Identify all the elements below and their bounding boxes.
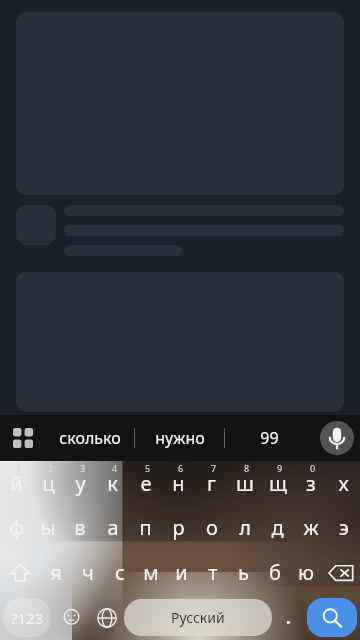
- button[interactable]: г: [195, 461, 228, 505]
- staticText: ф: [9, 514, 24, 541]
- staticText: 8: [244, 462, 250, 474]
- button[interactable]: н: [162, 461, 195, 505]
- staticText: п: [139, 514, 152, 541]
- staticText: ж: [303, 514, 319, 541]
- staticText: ш: [236, 470, 254, 497]
- button[interactable]: у: [64, 461, 96, 505]
- staticText: я: [50, 559, 62, 586]
- button[interactable]: с: [104, 550, 135, 595]
- button[interactable]: я: [40, 550, 72, 595]
- button[interactable]: ?123: [3, 598, 51, 637]
- button[interactable]: ж: [294, 505, 327, 550]
- staticText: х: [338, 470, 349, 497]
- staticText: н: [172, 470, 185, 497]
- button[interactable]: Русский: [124, 599, 272, 636]
- staticText: щ: [269, 470, 287, 497]
- staticText: ы: [40, 514, 56, 541]
- button[interactable]: ы: [32, 505, 64, 550]
- staticText: и: [175, 559, 188, 586]
- button[interactable]: Search: [307, 598, 357, 637]
- staticText: е: [140, 470, 152, 497]
- staticText: м: [143, 559, 159, 586]
- staticText: .: [286, 606, 291, 629]
- staticText: 2: [48, 462, 54, 474]
- button[interactable]: р: [162, 505, 195, 550]
- staticText: 6: [178, 462, 184, 474]
- button[interactable]: ь: [228, 550, 259, 595]
- staticText: 5: [145, 462, 151, 474]
- button[interactable]: нужно: [135, 415, 224, 461]
- staticText: э: [339, 514, 349, 541]
- button[interactable]: е: [129, 461, 162, 505]
- staticText: ь: [238, 559, 249, 586]
- button[interactable]: .: [272, 595, 304, 640]
- staticText: ч: [82, 559, 94, 586]
- button[interactable]: Clipboard: [0, 415, 46, 461]
- button[interactable]: Change language: [89, 595, 124, 640]
- staticText: 4: [112, 462, 118, 474]
- staticText: нужно: [155, 427, 205, 449]
- staticText: а: [107, 514, 119, 541]
- button[interactable]: э: [327, 505, 360, 550]
- staticText: о: [206, 514, 218, 541]
- staticText: в: [74, 514, 86, 541]
- button[interactable]: к: [96, 461, 129, 505]
- button[interactable]: 99: [225, 415, 314, 461]
- button[interactable]: з: [294, 461, 327, 505]
- button[interactable]: и: [166, 550, 197, 595]
- staticText: 3: [80, 462, 86, 474]
- button[interactable]: т: [197, 550, 228, 595]
- button[interactable]: ч: [72, 550, 104, 595]
- staticText: с: [115, 559, 125, 586]
- button[interactable]: Shift: [0, 550, 40, 595]
- staticText: б: [269, 559, 281, 586]
- staticText: р: [172, 514, 185, 541]
- button[interactable]: в: [64, 505, 96, 550]
- button[interactable]: й: [0, 461, 32, 505]
- staticText: сколько: [59, 427, 121, 449]
- staticText: т: [208, 559, 218, 586]
- staticText: 0: [310, 462, 316, 474]
- staticText: Русский: [171, 608, 225, 627]
- button[interactable]: ц: [32, 461, 64, 505]
- staticText: ю: [298, 559, 314, 586]
- button[interactable]: о: [195, 505, 228, 550]
- button[interactable]: м: [135, 550, 166, 595]
- button[interactable]: Emoji: [54, 595, 89, 640]
- button[interactable]: д: [261, 505, 294, 550]
- button[interactable]: х: [327, 461, 360, 505]
- staticText: у: [75, 470, 86, 497]
- staticText: к: [107, 470, 118, 497]
- staticText: д: [271, 514, 284, 541]
- button[interactable]: сколько: [46, 415, 134, 461]
- button[interactable]: Backspace: [321, 550, 360, 595]
- staticText: ?123: [11, 608, 44, 628]
- staticText: 99: [260, 427, 279, 449]
- button[interactable]: а: [96, 505, 129, 550]
- staticText: 9: [277, 462, 283, 474]
- staticText: 1: [16, 462, 22, 474]
- staticText: г: [207, 470, 216, 497]
- staticText: 7: [211, 462, 217, 474]
- staticText: л: [239, 514, 251, 541]
- staticText: ц: [42, 470, 55, 497]
- button[interactable]: щ: [261, 461, 294, 505]
- button[interactable]: ю: [290, 550, 321, 595]
- button[interactable]: п: [129, 505, 162, 550]
- staticText: й: [10, 470, 23, 497]
- button[interactable]: Voice input: [314, 415, 360, 461]
- staticText: з: [306, 470, 316, 497]
- button[interactable]: л: [228, 505, 261, 550]
- button[interactable]: ш: [228, 461, 261, 505]
- button[interactable]: ф: [0, 505, 32, 550]
- button[interactable]: б: [259, 550, 290, 595]
